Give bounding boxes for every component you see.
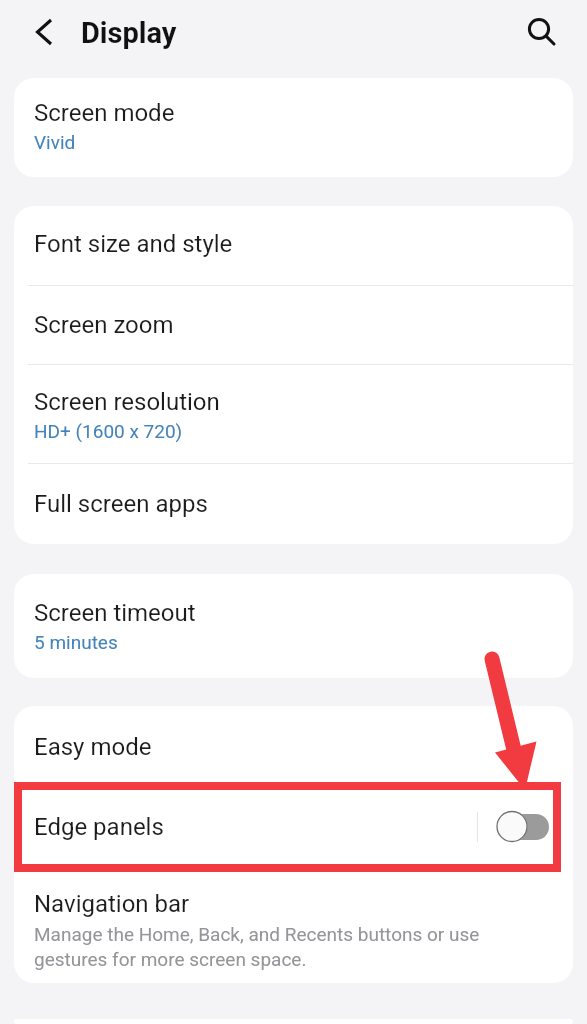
staticText: Manage the Home, Back, and Recents butto… [34,923,480,970]
staticText: Font size and style [34,230,233,258]
staticText: Screen resolution [34,388,220,416]
staticText: Screen timeout [34,599,196,627]
staticText: HD+ (1600 x 720) [34,420,183,442]
staticText: Screen mode [34,99,175,127]
staticText: 5 minutes [34,631,118,653]
button[interactable]: Edge panels, off [494,810,552,846]
button[interactable]: Full screen apps [14,464,573,544]
button[interactable]: Navigate up [20,9,68,57]
staticText: Display [81,16,177,50]
button[interactable]: Edge panels [14,778,573,873]
button[interactable]: Search [515,5,563,53]
button[interactable]: Screen resolution [14,365,573,463]
button[interactable]: Screen timeout [14,574,573,678]
staticText: Navigation bar [34,890,190,918]
staticText: Easy mode [34,733,152,761]
staticText: Edge panels [34,813,164,841]
staticText: Screen zoom [34,311,174,339]
button[interactable]: Screen zoom [14,286,573,364]
staticText: Full screen apps [34,490,208,518]
button[interactable]: Easy mode [14,706,573,778]
button[interactable]: Screen mode [14,78,573,177]
button[interactable]: Font size and style [14,206,573,285]
staticText: Vivid [34,131,76,153]
button[interactable]: Navigation bar [14,873,573,983]
